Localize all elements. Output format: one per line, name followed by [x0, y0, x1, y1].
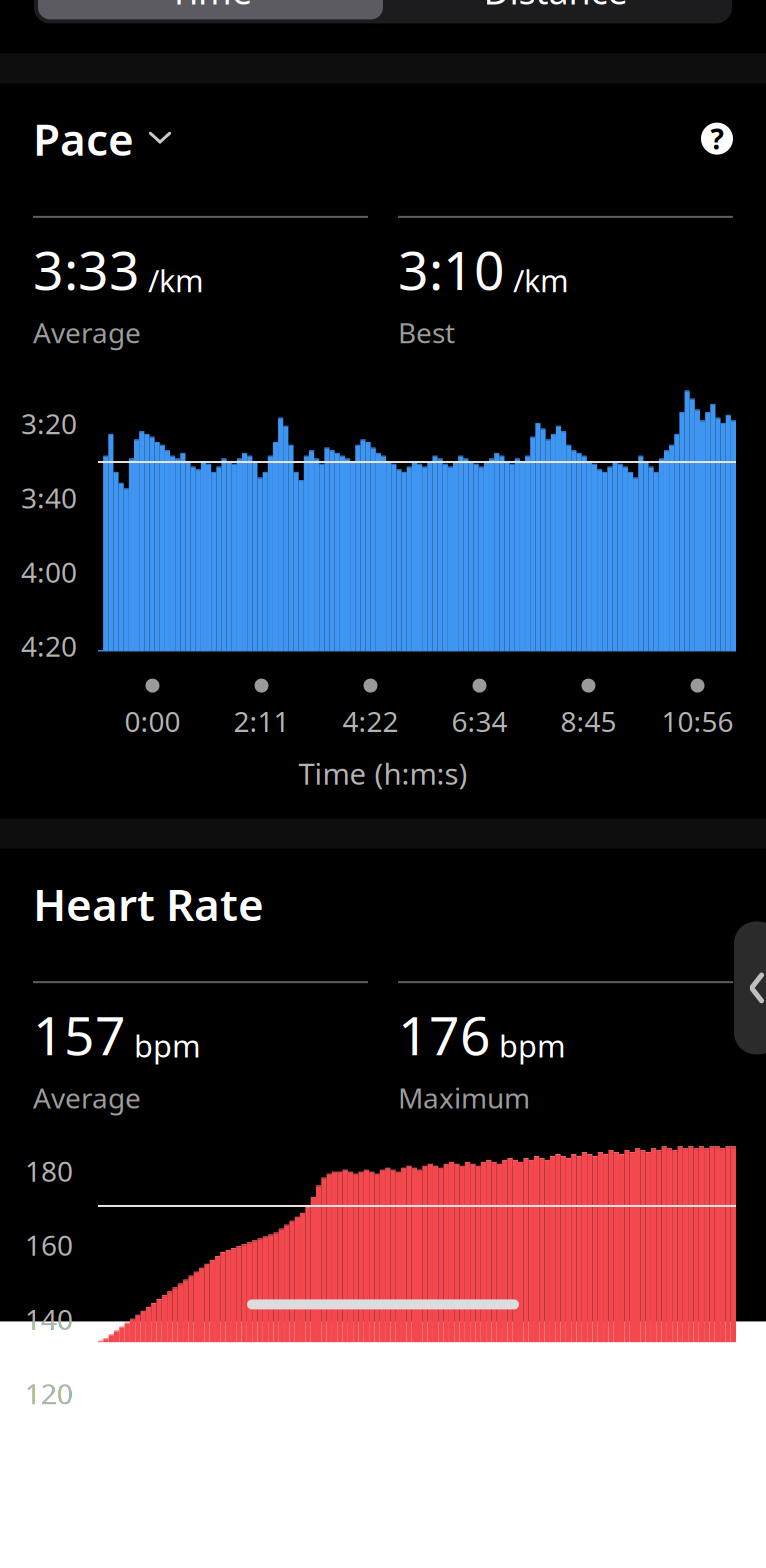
staticText: 160: [25, 1226, 73, 1264]
staticText: 176: [398, 999, 491, 1070]
staticText: Heart Rate: [33, 875, 264, 933]
staticText: 3:20: [21, 405, 77, 442]
staticText: 4:00: [21, 553, 77, 590]
staticText: 140: [25, 1300, 73, 1338]
staticText: 4:20: [21, 627, 77, 665]
button[interactable]: Help about pace: [701, 123, 733, 155]
button[interactable]: Pace: [33, 109, 172, 168]
staticText: Time: [169, 0, 252, 14]
staticText: 3:33: [33, 234, 140, 305]
button[interactable]: Show panel: [720, 921, 766, 1054]
button[interactable]: Distance: [383, 0, 728, 19]
staticText: bpm: [499, 1025, 566, 1066]
staticText: 120: [25, 1375, 73, 1412]
staticText: Average: [33, 1079, 141, 1116]
staticText: bpm: [134, 1025, 201, 1066]
staticText: 10:56: [661, 703, 733, 740]
staticText: 0:00: [124, 703, 180, 740]
staticText: 6:34: [451, 703, 507, 740]
staticText: Maximum: [398, 1079, 530, 1116]
staticText: 3:40: [21, 479, 77, 516]
staticText: Time (h:m:s): [298, 754, 467, 793]
staticText: 8:45: [560, 703, 616, 740]
staticText: /km: [513, 260, 569, 301]
staticText: 3:10: [398, 234, 505, 305]
staticText: Best: [398, 314, 455, 351]
staticText: Pace: [33, 109, 134, 168]
button[interactable]: Time: [38, 0, 383, 19]
staticText: /km: [148, 260, 204, 301]
staticText: ?: [710, 120, 723, 157]
staticText: Distance: [483, 0, 627, 14]
staticText: 4:22: [342, 703, 398, 740]
staticText: 180: [25, 1152, 73, 1189]
staticText: 157: [33, 999, 126, 1070]
staticText: 2:11: [233, 703, 289, 740]
staticText: Average: [33, 314, 141, 351]
